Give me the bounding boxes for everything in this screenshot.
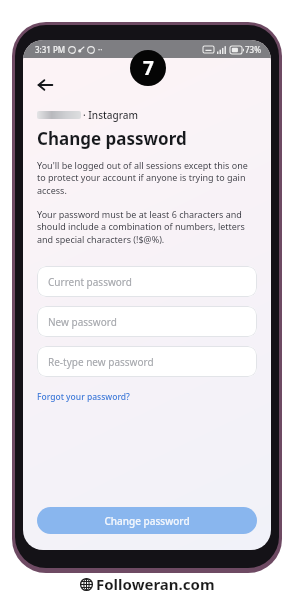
staticText: ·· <box>98 44 103 55</box>
staticText: 73% <box>245 44 261 55</box>
button[interactable]: New password <box>37 306 257 337</box>
staticText: Change password <box>37 127 187 150</box>
staticText: · Instagram <box>83 108 138 122</box>
staticText: 7 <box>143 55 154 81</box>
staticText: Current password <box>48 275 132 289</box>
button[interactable]: Forgot your password? <box>37 389 130 405</box>
staticText: New password <box>48 315 117 329</box>
staticText: Your password must be at least 6 charact… <box>37 208 257 246</box>
button[interactable]: Change password <box>37 507 257 534</box>
button[interactable]: Re-type new password <box>37 346 257 377</box>
button[interactable]: Current password <box>37 266 257 297</box>
staticText: Forgot your password? <box>37 391 130 403</box>
staticText: You'll be logged out of all sessions exc… <box>37 159 257 197</box>
other: Step 7 <box>130 50 166 86</box>
button[interactable]: Back <box>37 72 63 98</box>
staticText: Re-type new password <box>48 355 154 369</box>
staticText: Followeran.com <box>96 574 215 594</box>
staticText: 3:31 PM <box>35 44 66 55</box>
staticText: Change password <box>104 514 190 528</box>
